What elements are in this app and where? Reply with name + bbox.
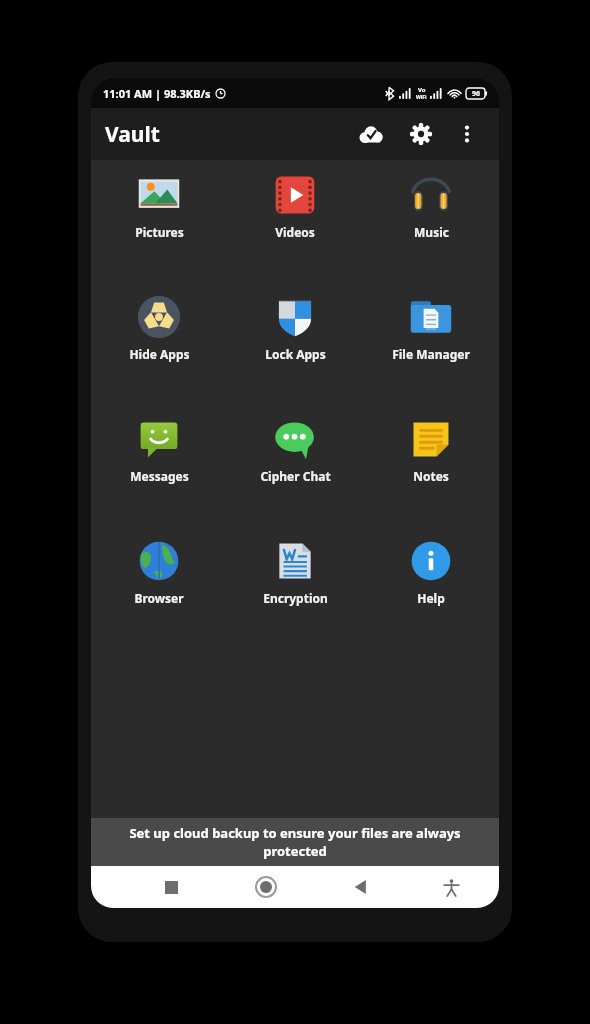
staticText: Messages — [130, 468, 189, 484]
staticText: WiFi — [416, 94, 427, 101]
staticText: Cipher Chat — [260, 468, 331, 484]
button[interactable]: File Manager — [363, 294, 499, 384]
button[interactable]: Lock Apps — [227, 294, 363, 384]
button[interactable]: Settings — [401, 114, 441, 154]
staticText: 96 — [472, 89, 481, 99]
button[interactable]: Cloud backup — [351, 114, 391, 154]
button[interactable]: Browser — [91, 538, 227, 628]
button[interactable]: Help — [363, 538, 499, 628]
button[interactable]: Home — [246, 867, 286, 907]
staticText: Vo — [418, 86, 426, 94]
button[interactable]: Accessibility — [431, 867, 471, 907]
staticText: Set up cloud backup to ensure your files… — [101, 824, 489, 860]
staticText: Notes — [413, 468, 449, 484]
staticText: Lock Apps — [265, 346, 326, 362]
staticText: Hide Apps — [129, 346, 190, 362]
staticText: Pictures — [135, 224, 184, 240]
staticText: Videos — [275, 224, 315, 240]
staticText: Encryption — [263, 590, 328, 606]
staticText: File Manager — [392, 346, 470, 362]
staticText: Browser — [134, 590, 184, 606]
button[interactable]: Pictures — [91, 172, 227, 262]
button[interactable]: Notes — [363, 416, 499, 506]
staticText: 11:01 AM | 98.3KB/s — [103, 86, 211, 101]
button[interactable]: Messages — [91, 416, 227, 506]
button[interactable]: Cipher Chat — [227, 416, 363, 506]
staticText: Music — [414, 224, 449, 240]
button[interactable]: Encryption — [227, 538, 363, 628]
button[interactable]: Recents — [151, 867, 191, 907]
button[interactable]: More options — [449, 116, 485, 152]
button[interactable]: Videos — [227, 172, 363, 262]
button[interactable]: Hide Apps — [91, 294, 227, 384]
staticText: Help — [417, 590, 445, 606]
staticText: Vault — [105, 120, 160, 149]
button[interactable]: Set up cloud backup to ensure your files… — [91, 818, 499, 866]
button[interactable]: Music — [363, 172, 499, 262]
button[interactable]: Back — [341, 867, 381, 907]
